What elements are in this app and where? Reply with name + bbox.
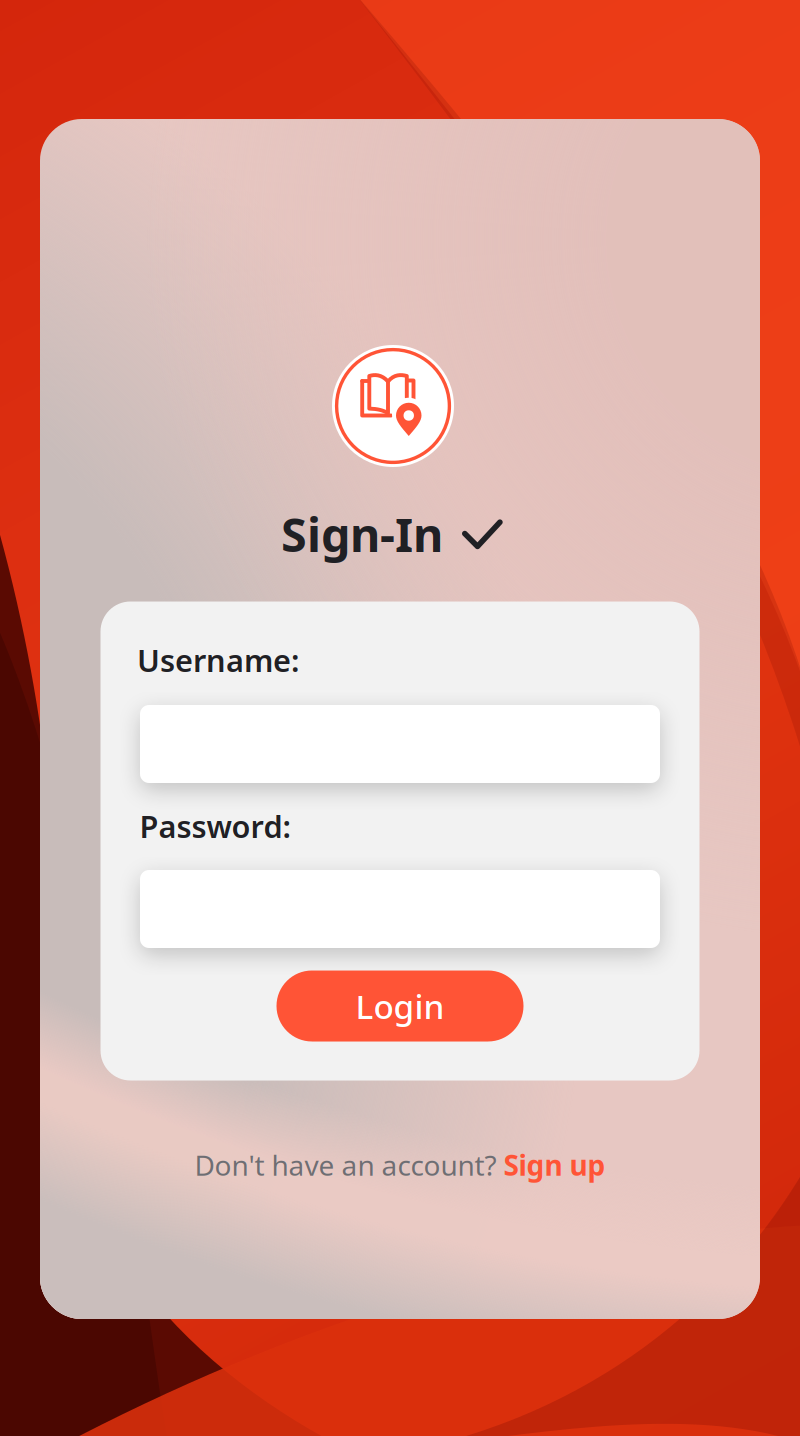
- staticText: Sign up: [503, 1146, 605, 1184]
- staticText: Login: [355, 984, 444, 1028]
- staticText: Password:: [139, 806, 290, 846]
- staticText: Don't have an account?: [194, 1146, 503, 1184]
- staticText: Username:: [137, 640, 299, 680]
- staticText: Sign-In: [281, 503, 443, 565]
- button[interactable]: Login: [276, 970, 523, 1041]
- button[interactable]: Sign up: [503, 1146, 605, 1184]
